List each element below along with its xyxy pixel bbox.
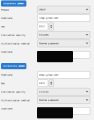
- staticText: 465: [39, 82, 45, 85]
- staticText: INCOMING SERVER: [3, 2, 23, 5]
- staticText: Normal password: [39, 42, 59, 45]
- button[interactable]: SSL/TLS: [37, 31, 90, 38]
- staticText: Hostname: [1, 17, 12, 20]
- button[interactable]: SSL/TLS: [37, 88, 90, 95]
- staticText: SSL/TLS: [39, 90, 49, 93]
- staticText: Port: [1, 82, 5, 85]
- button[interactable]: Normal password: [37, 96, 90, 104]
- staticText: imap.gmail.com: [39, 17, 58, 19]
- staticText: Protocol: [1, 8, 9, 11]
- staticText: OUTGOING SERVER: [3, 65, 24, 67]
- staticText: Username: [1, 51, 12, 53]
- staticText: Port: [1, 25, 5, 28]
- staticText: Normal password: [39, 99, 59, 101]
- staticText: Connection security: [1, 90, 25, 93]
- staticText: Hostname: [1, 74, 12, 76]
- staticText: smtp.gmail.com: [39, 73, 58, 76]
- button[interactable]: Adjust port number: [49, 23, 53, 30]
- staticText: SSL/TLS: [39, 33, 49, 36]
- staticText: Authentication method: [1, 42, 30, 45]
- staticText: 993: [39, 25, 45, 28]
- staticText: IMAP: [39, 8, 45, 11]
- button[interactable]: Adjust port number: [49, 80, 53, 87]
- button[interactable]: Normal password: [37, 40, 90, 47]
- staticText: Authentication method: [1, 99, 30, 102]
- button[interactable]: IMAP: [37, 6, 90, 13]
- staticText: Username: [1, 107, 12, 110]
- staticText: Connection security: [1, 34, 25, 36]
